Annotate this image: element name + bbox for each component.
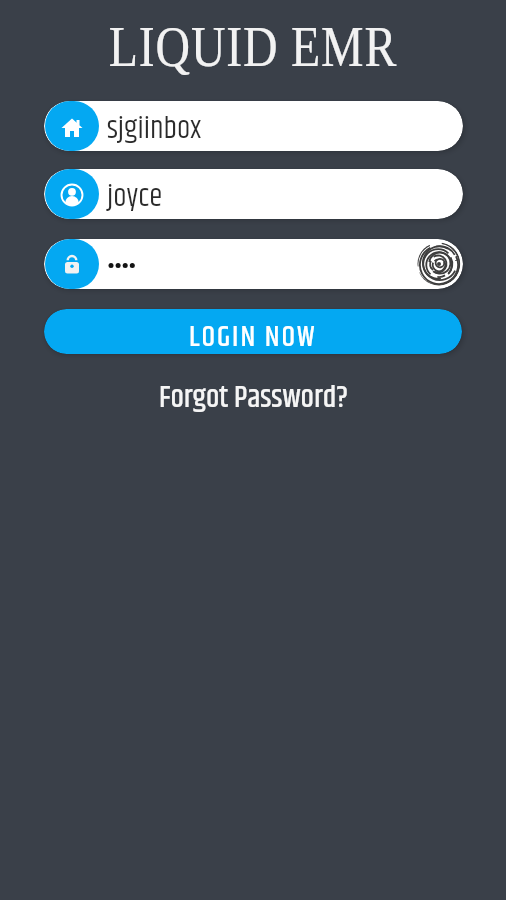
button[interactable]: LOGIN NOW bbox=[44, 309, 462, 354]
staticText: joyce bbox=[107, 175, 163, 221]
staticText: LIQUID EMR bbox=[109, 14, 397, 78]
button[interactable] bbox=[44, 169, 463, 219]
button[interactable] bbox=[44, 101, 463, 151]
staticText: Forgot Password? bbox=[159, 376, 348, 422]
button[interactable] bbox=[44, 239, 463, 289]
button[interactable]: Forgot Password? bbox=[159, 376, 348, 422]
staticText: sjgiinbox bbox=[107, 107, 202, 153]
staticText: LOGIN NOW bbox=[189, 316, 317, 354]
